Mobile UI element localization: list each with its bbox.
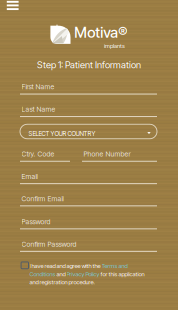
staticText: Step 1: Patient Information xyxy=(37,59,141,70)
button[interactable]: SELECT YOUR COUNTRY xyxy=(20,124,157,139)
staticText: Confirm Password xyxy=(22,240,77,248)
button[interactable]: Last Name xyxy=(20,107,157,117)
staticText: Ctry. Code xyxy=(22,150,55,158)
staticText: for this application xyxy=(99,270,144,277)
staticText: Motiva® xyxy=(74,24,127,41)
button[interactable]: Accept terms and conditions xyxy=(21,262,28,269)
staticText: Password xyxy=(22,217,51,226)
button[interactable]: Password xyxy=(20,219,157,229)
button[interactable]: Conditions xyxy=(29,270,55,277)
staticText: Last Name xyxy=(22,105,56,113)
staticText: Conditions xyxy=(29,270,55,277)
button[interactable]: First Name xyxy=(20,84,157,94)
button[interactable]: Phone Number xyxy=(82,152,157,162)
staticText: and registration procedure. xyxy=(29,279,94,286)
staticText: Terms and xyxy=(101,262,127,269)
button[interactable]: Terms and xyxy=(101,262,127,269)
staticText: I have read and agree with the xyxy=(29,262,101,269)
staticText: SELECT YOUR COUNTRY xyxy=(29,130,96,137)
staticText: implants xyxy=(104,42,125,49)
staticText: Phone Number xyxy=(84,150,131,158)
button[interactable]: Ctry. Code xyxy=(20,152,70,162)
button[interactable]: Privacy Policy xyxy=(66,270,99,277)
button[interactable]: Menu xyxy=(7,1,19,10)
button[interactable]: Confirm Email xyxy=(20,196,157,206)
staticText: First Name xyxy=(22,83,55,91)
button[interactable]: Confirm Password xyxy=(20,242,157,252)
staticText: Confirm Email xyxy=(22,194,64,203)
button[interactable]: Email xyxy=(20,174,157,184)
staticText: Privacy Policy xyxy=(66,270,99,277)
staticText: Email xyxy=(22,172,38,181)
staticText: and xyxy=(55,270,66,277)
